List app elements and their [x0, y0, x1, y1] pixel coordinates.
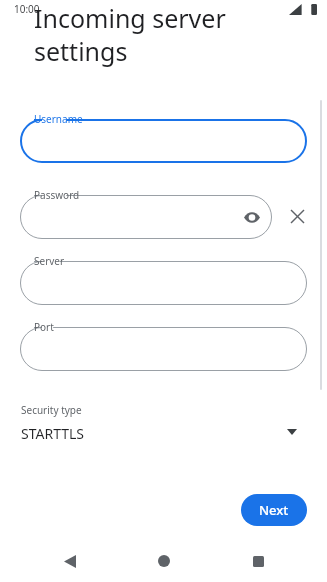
button[interactable]: Next: [241, 494, 307, 526]
button[interactable]: Back: [46, 540, 94, 582]
button[interactable]: Recent apps: [234, 540, 282, 582]
button[interactable]: Show password: [240, 205, 264, 229]
button[interactable]: Home: [140, 540, 188, 582]
button[interactable]: Server: [20, 261, 307, 305]
staticText: Port: [34, 320, 54, 334]
staticText: Next: [259, 501, 289, 519]
staticText: Server: [34, 254, 65, 268]
button[interactable]: Port: [20, 327, 307, 371]
staticText: Username: [34, 112, 83, 126]
button[interactable]: Clear password: [284, 203, 310, 229]
staticText: Password: [34, 188, 80, 202]
button[interactable]: Security type: [12, 398, 315, 454]
staticText: 10:00: [14, 2, 40, 16]
staticText: STARTTLS: [21, 424, 85, 443]
staticText: Incoming server settings: [34, 1, 226, 68]
button[interactable]: Username: [20, 119, 307, 163]
staticText: Security type: [21, 403, 82, 417]
button[interactable]: Password: [20, 195, 272, 239]
